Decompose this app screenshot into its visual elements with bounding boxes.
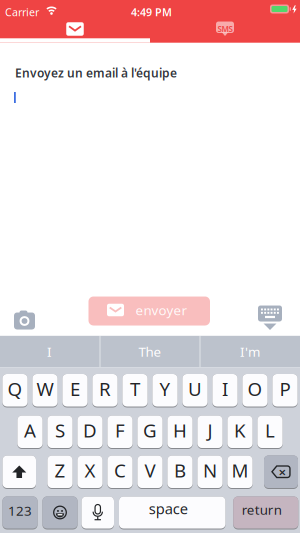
button[interactable]: T [122,374,148,407]
button[interactable]: SMS [150,19,300,38]
button[interactable]: M [227,455,253,489]
button[interactable]: Email [0,19,150,38]
button[interactable]: 123 [2,496,37,529]
staticText: O [247,376,262,401]
staticText: H [173,418,187,443]
staticText: Z [54,458,65,483]
button[interactable]: I [0,336,99,367]
staticText: The [138,343,161,360]
button[interactable]: O [242,374,268,407]
button[interactable]: Dictate [81,496,114,529]
button[interactable]: D [77,415,103,449]
staticText: M [231,458,248,483]
staticText: Envoyez un email à l'équipe [15,65,177,81]
staticText: Y [159,376,170,401]
button[interactable]: The [100,336,199,367]
button[interactable]: A [17,415,43,449]
button[interactable]: F [107,415,133,449]
staticText: X [84,458,95,483]
button[interactable]: R [92,374,118,407]
button[interactable]: Dismiss keyboard [250,302,290,334]
staticText: SMS [217,23,232,34]
button[interactable]: C [107,455,133,489]
button[interactable]: space [119,496,225,529]
button[interactable]: H [167,415,193,449]
staticText: J [207,418,212,443]
staticText: I [222,376,228,401]
staticText: V [144,458,155,483]
staticText: N [203,458,217,483]
staticText: P [279,376,290,401]
staticText: E [70,376,80,401]
button[interactable]: L [257,415,283,449]
staticText: 4:49 PM [131,5,172,19]
staticText: F [115,418,125,443]
staticText: G [143,418,157,443]
button[interactable]: Emoji [42,496,77,529]
button[interactable]: Attach photo [4,305,44,335]
button[interactable]: I'm [200,336,299,367]
button[interactable]: G [137,415,163,449]
button[interactable]: B [167,455,193,489]
staticText: K [234,418,246,443]
staticText: T [130,376,140,401]
staticText: envoyer [135,301,187,319]
button[interactable]: J [197,415,223,449]
staticText: Carrier [5,5,39,19]
button[interactable]: Shift [2,455,36,489]
button[interactable]: N [197,455,223,489]
button[interactable]: P [272,374,298,407]
staticText: B [174,458,186,483]
staticText: R [99,376,111,401]
staticText: L [265,418,275,443]
staticText: D [83,418,97,443]
staticText: I'm [240,343,260,360]
staticText: S [55,418,65,443]
staticText: Q [7,376,22,401]
staticText: space [149,499,188,518]
button[interactable]: W [32,374,58,407]
button[interactable]: K [227,415,253,449]
staticText: I [47,343,52,360]
button[interactable]: Delete [264,455,298,489]
button[interactable]: return [233,496,298,529]
staticText: U [188,376,202,401]
button[interactable]: U [182,374,208,407]
button[interactable]: Z [47,455,73,489]
button[interactable]: V [137,455,163,489]
button[interactable]: S [47,415,73,449]
staticText: return [242,501,282,518]
button[interactable]: Y [152,374,178,407]
staticText: × [278,463,286,481]
staticText: 123 [8,502,32,519]
button[interactable]: envoyer [88,296,210,325]
button[interactable]: I [212,374,238,407]
button[interactable]: Q [2,374,28,407]
button[interactable]: X [77,455,103,489]
staticText: C [114,458,126,483]
button[interactable]: E [62,374,88,407]
staticText: W [36,376,53,401]
staticText: A [24,418,36,443]
